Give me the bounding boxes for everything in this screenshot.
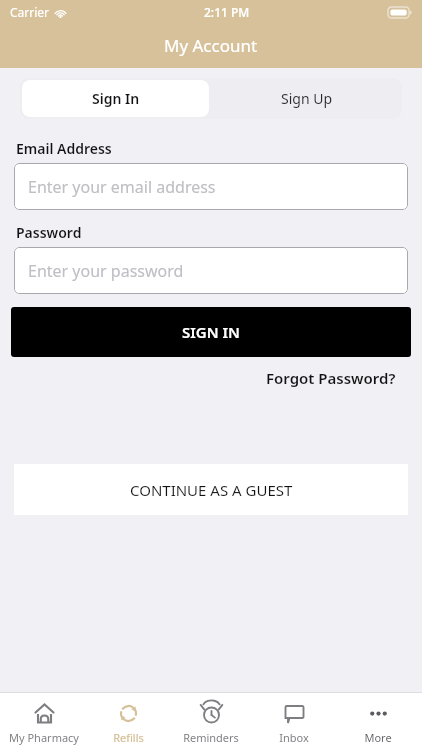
button[interactable]: Refills [89,692,167,750]
staticText: Enter your email address [28,176,216,198]
staticText: Sign In [92,89,140,108]
button[interactable]: Enter your password [14,247,408,294]
staticText: Refills [113,730,144,745]
button[interactable]: Inbox [255,692,333,750]
staticText: Reminders [183,730,239,745]
staticText: My Account [164,34,258,57]
button[interactable]: Sign Up [211,78,402,119]
staticText: My Pharmacy [9,730,79,745]
staticText: SIGN IN [182,322,240,342]
staticText: Enter your password [28,260,184,282]
button[interactable]: My Pharmacy [5,692,83,750]
staticText: More [364,730,392,745]
button[interactable]: Forgot Password? [266,368,396,388]
staticText: Password [16,223,82,242]
button[interactable]: SIGN IN [11,307,411,357]
staticText: Inbox [279,730,309,745]
button[interactable]: Reminders [172,692,250,750]
staticText: CONTINUE AS A GUEST [130,480,293,500]
staticText: Sign Up [281,89,333,108]
button[interactable]: More [339,692,417,750]
staticText: 2:11 PM [204,4,250,20]
button[interactable]: Enter your email address [14,163,408,210]
staticText: Email Address [16,139,112,158]
staticText: Forgot Password? [266,368,396,388]
button[interactable]: CONTINUE AS A GUEST [14,464,408,515]
staticText: Carrier [10,4,50,20]
button[interactable]: Sign In [22,80,209,117]
